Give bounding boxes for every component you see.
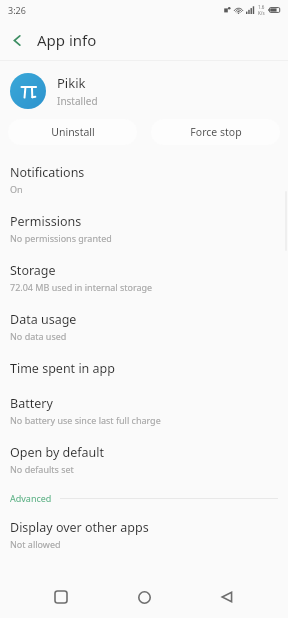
staticText: Data usage [10,311,77,328]
staticText: Not allowed [10,538,61,550]
staticText: Advanced [10,492,52,504]
staticText: Uninstall [51,125,95,139]
staticText: No data used [10,330,67,342]
button[interactable]: Time spent in app [0,351,288,386]
button[interactable]: Display over other apps [0,510,288,559]
button[interactable]: Data usage [0,302,288,351]
button[interactable]: Home [122,576,166,618]
staticText: Battery [10,395,53,412]
staticText: Permissions [10,213,82,230]
button[interactable]: Battery [0,386,288,435]
staticText: No defaults set [10,463,74,475]
button[interactable]: Storage [0,253,288,302]
staticText: 72.04 MB used in internal storage [10,281,153,293]
staticText: Pikik [57,74,86,92]
staticText: 1.6 [258,4,265,10]
button[interactable]: Notifications [0,155,288,204]
button[interactable]: Recent apps [39,576,83,618]
staticText: App info [37,30,97,50]
button[interactable]: Back [205,576,249,618]
staticText: Display over other apps [10,519,149,536]
button[interactable]: Pikik [0,61,288,119]
staticText: Notifications [10,164,85,181]
staticText: Time spent in app [10,360,115,377]
staticText: Installed [57,94,98,108]
button[interactable]: Open by default [0,435,288,484]
staticText: K/s [258,10,265,16]
staticText: Open by default [10,444,105,461]
staticText: Storage [10,262,56,279]
staticText: 3:26 [8,4,26,16]
button[interactable]: Back [0,23,34,57]
button[interactable]: Permissions [0,204,288,253]
button[interactable]: Uninstall [8,119,137,145]
staticText: On [10,183,23,195]
button[interactable]: Force stop [151,119,280,145]
staticText: No permissions granted [10,232,112,244]
staticText: No battery use since last full charge [10,414,161,426]
staticText: Force stop [190,125,242,139]
